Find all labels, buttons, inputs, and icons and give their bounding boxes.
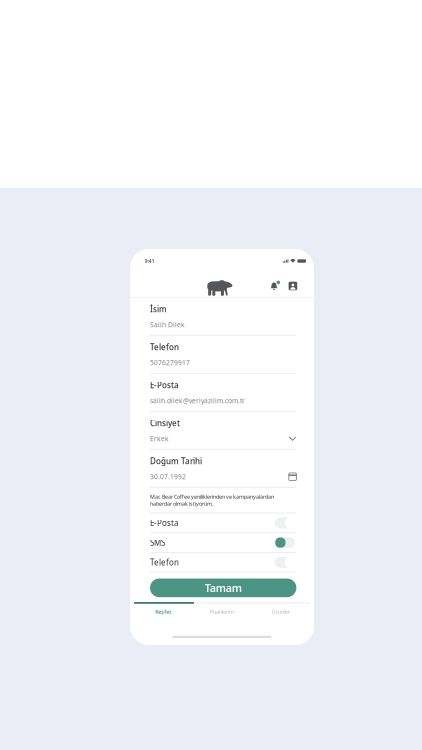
staticText: 5076279917 — [150, 358, 190, 367]
staticText: Telefon — [150, 557, 179, 568]
button[interactable]: Ürünler — [251, 604, 310, 620]
staticText: 30.07.1992 — [150, 472, 186, 481]
staticText: Mac Bear Coffee yeniliklerinden ve kampa… — [150, 493, 274, 500]
staticText: SMS — [150, 537, 165, 548]
staticText: Ürünler — [272, 608, 290, 615]
staticText: Cinsiyet — [150, 418, 180, 428]
staticText: salih.dilek@veriyazilim.com.tr — [150, 396, 245, 405]
button[interactable]: Profile — [289, 282, 297, 290]
staticText: Doğum Tarihi — [150, 456, 202, 466]
staticText: E-Posta — [150, 518, 178, 528]
button[interactable]: Puanlarım — [193, 604, 251, 620]
button[interactable]: Keşfet — [134, 604, 193, 620]
staticText: 9:41 — [144, 257, 154, 265]
staticText: İsim — [150, 304, 167, 314]
button[interactable]: Tamam — [150, 578, 296, 597]
staticText: Keşfet — [155, 608, 171, 615]
staticText: Puanlarım — [210, 608, 234, 615]
button[interactable]: Telefon — [150, 553, 296, 572]
staticText: haberdar olmak istiyorum. — [150, 500, 213, 507]
staticText: Erkek — [150, 434, 169, 443]
button[interactable]: E-Posta — [150, 513, 296, 533]
staticText: Salih Dilek — [150, 320, 185, 329]
staticText: Tamam — [205, 581, 242, 595]
staticText: E-Posta — [150, 380, 179, 390]
button[interactable]: SMS — [150, 533, 296, 553]
staticText: Telefon — [150, 342, 179, 352]
button[interactable]: Notifications — [270, 282, 278, 290]
